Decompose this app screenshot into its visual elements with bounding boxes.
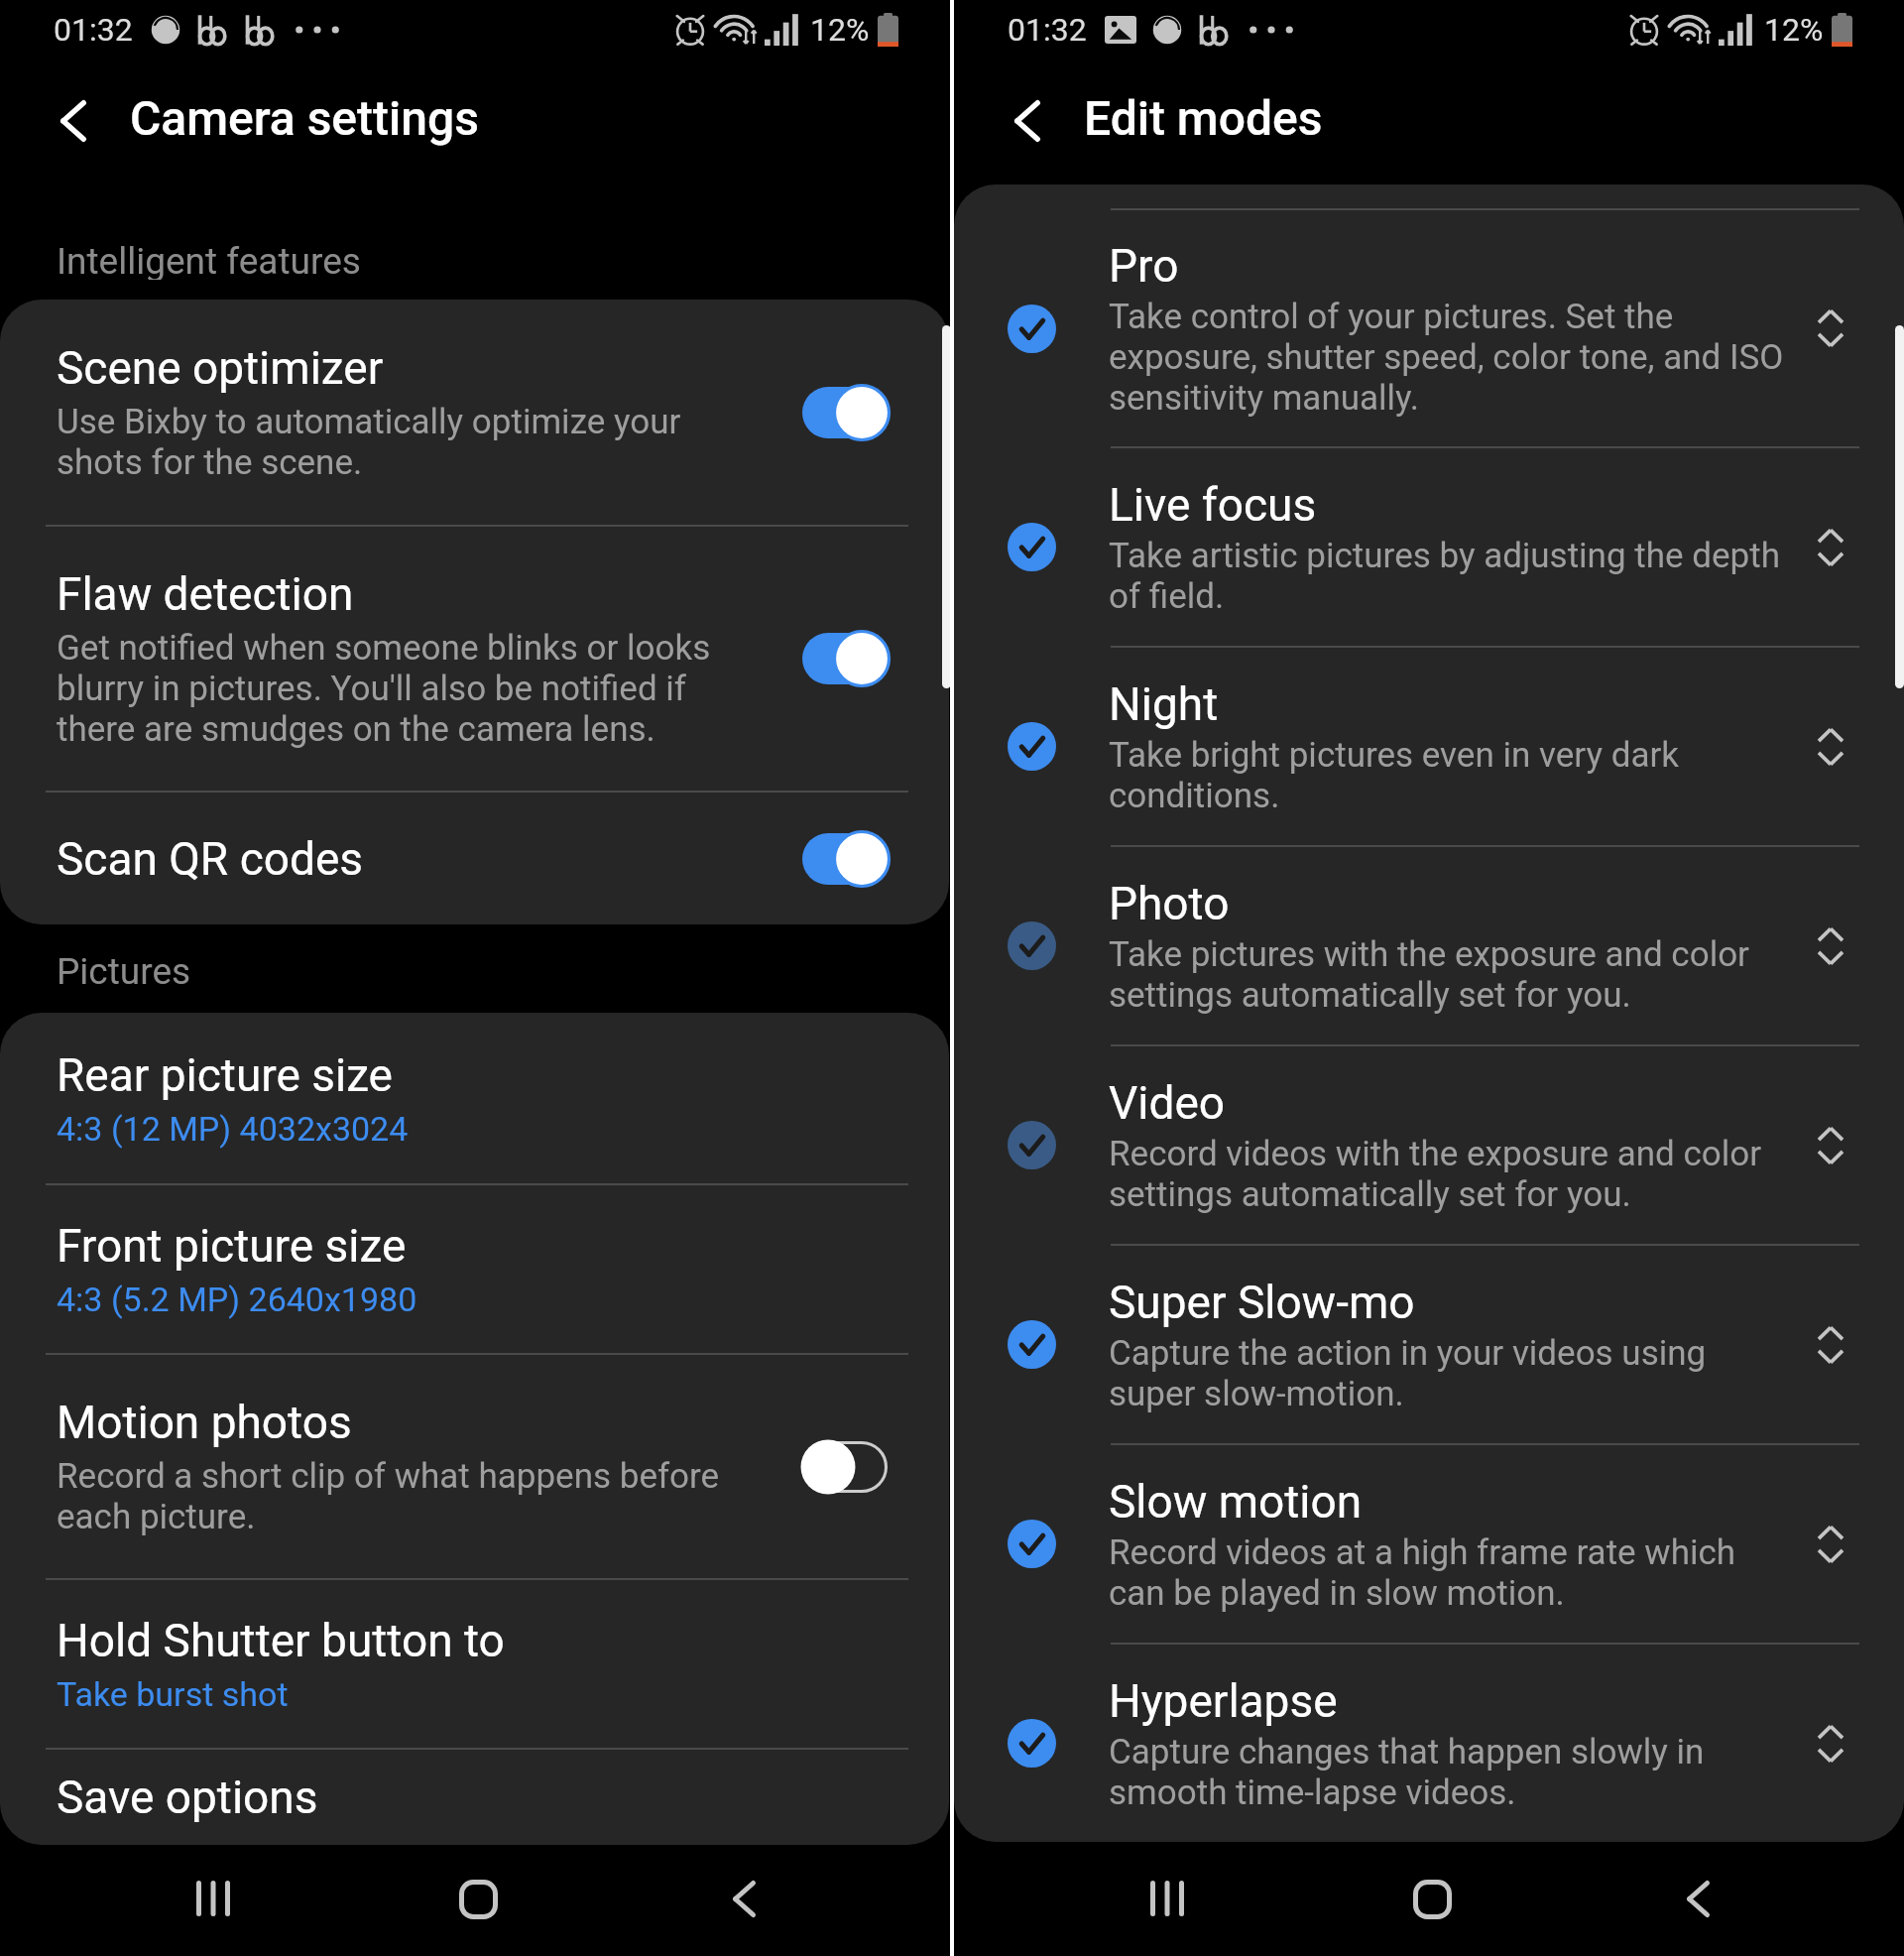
- staticText: Take bright pictures even in very dark c…: [1109, 735, 1680, 816]
- button[interactable]: Home: [1392, 1864, 1472, 1935]
- button[interactable]: Hold Shutter button to: [0, 1580, 949, 1748]
- button[interactable]: Switch on: [802, 387, 888, 438]
- staticText: Scan QR codes: [57, 832, 364, 886]
- staticText: 4:3 (5.2 MP) 2640x1980: [57, 1280, 417, 1319]
- button[interactable]: Reorder: [1816, 1524, 1845, 1565]
- staticText: Take artistic pictures by adjusting the …: [1109, 536, 1780, 617]
- staticText: Motion photos: [57, 1396, 352, 1449]
- button[interactable]: Toggle mode: [954, 847, 1904, 1044]
- staticText: Flaw detection: [57, 567, 354, 621]
- staticText: Capture the action in your videos using …: [1109, 1333, 1707, 1414]
- button[interactable]: Switch on: [802, 633, 888, 684]
- button[interactable]: Toggle mode: [1008, 1320, 1056, 1369]
- button[interactable]: Save options: [0, 1750, 949, 1845]
- staticText: Video: [1109, 1076, 1226, 1130]
- staticText: Hyperlapse: [1109, 1674, 1338, 1728]
- button[interactable]: Reorder: [1816, 527, 1845, 568]
- button[interactable]: Reorder: [1816, 1723, 1845, 1765]
- staticText: Edit modes: [1084, 90, 1323, 146]
- button[interactable]: Toggle mode: [1008, 921, 1056, 970]
- staticText: Record videos at a high frame rate which…: [1109, 1532, 1736, 1614]
- staticText: 4:3 (12 MP) 4032x3024: [57, 1109, 409, 1149]
- staticText: Record a short clip of what happens befo…: [57, 1456, 720, 1537]
- button[interactable]: Home: [438, 1864, 518, 1935]
- staticText: Take control of your pictures. Set the e…: [1109, 297, 1784, 419]
- button[interactable]: Toggle mode: [1008, 1520, 1056, 1568]
- staticText: Photo: [1109, 877, 1230, 930]
- button[interactable]: Toggle mode: [1008, 523, 1056, 571]
- button[interactable]: Reorder: [1816, 1125, 1845, 1166]
- button[interactable]: Toggle mode: [1008, 1719, 1056, 1768]
- button[interactable]: Recents: [174, 1863, 253, 1934]
- staticText: Front picture size: [57, 1219, 407, 1273]
- staticText: 12%: [810, 11, 870, 49]
- button[interactable]: Back: [994, 87, 1061, 155]
- staticText: 01:32: [54, 11, 133, 49]
- staticText: Get notified when someone blinks or look…: [57, 628, 711, 750]
- button[interactable]: Back: [1658, 1863, 1737, 1934]
- button[interactable]: Scan QR codes: [0, 793, 949, 924]
- staticText: Slow motion: [1109, 1475, 1363, 1528]
- button[interactable]: Toggle mode: [1008, 722, 1056, 771]
- button[interactable]: Toggle mode: [1008, 1121, 1056, 1169]
- button[interactable]: Flaw detection: [0, 527, 949, 791]
- staticText: 01:32: [1008, 11, 1087, 49]
- staticText: Pro: [1109, 239, 1179, 293]
- staticText: Capture changes that happen slowly in sm…: [1109, 1732, 1705, 1813]
- staticText: Super Slow-mo: [1109, 1276, 1415, 1329]
- button[interactable]: Reorder: [1816, 1324, 1845, 1366]
- button[interactable]: Toggle mode: [954, 1445, 1904, 1643]
- button[interactable]: Back: [704, 1863, 783, 1934]
- staticText: Rear picture size: [57, 1048, 394, 1102]
- button[interactable]: Switch off: [802, 1441, 888, 1493]
- staticText: Take pictures with the exposure and colo…: [1109, 934, 1749, 1016]
- button[interactable]: Toggle mode: [954, 1046, 1904, 1244]
- button[interactable]: Scene optimizer: [0, 300, 949, 525]
- button[interactable]: Rear picture size: [0, 1013, 949, 1183]
- staticText: Take burst shot: [57, 1674, 289, 1714]
- button[interactable]: Switch on: [802, 833, 888, 885]
- button[interactable]: Reorder: [1816, 307, 1845, 349]
- staticText: Intelligent features: [57, 240, 361, 280]
- button[interactable]: Toggle mode: [954, 648, 1904, 845]
- button[interactable]: Front picture size: [0, 1185, 949, 1353]
- button[interactable]: Toggle mode: [954, 448, 1904, 646]
- staticText: Hold Shutter button to: [57, 1614, 505, 1667]
- staticText: Camera settings: [130, 90, 479, 146]
- button[interactable]: Recents: [1128, 1863, 1207, 1934]
- button[interactable]: Toggle mode: [954, 1645, 1904, 1842]
- staticText: Live focus: [1109, 478, 1317, 532]
- staticText: Pictures: [57, 950, 191, 990]
- staticText: Use Bixby to automatically optimize your…: [57, 402, 681, 483]
- staticText: Save options: [57, 1771, 318, 1824]
- button[interactable]: Toggle mode: [954, 210, 1904, 446]
- button[interactable]: Motion photos: [0, 1355, 949, 1578]
- button[interactable]: Toggle mode: [954, 1246, 1904, 1443]
- staticText: 12%: [1764, 11, 1824, 49]
- staticText: Night: [1109, 677, 1219, 731]
- button[interactable]: Back: [40, 87, 107, 155]
- staticText: Record videos with the exposure and colo…: [1109, 1134, 1762, 1215]
- button[interactable]: Reorder: [1816, 925, 1845, 967]
- staticText: Scene optimizer: [57, 341, 384, 395]
- button[interactable]: Toggle mode: [1008, 305, 1056, 353]
- button[interactable]: Reorder: [1816, 726, 1845, 768]
